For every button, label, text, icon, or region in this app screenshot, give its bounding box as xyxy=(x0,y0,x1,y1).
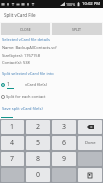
button[interactable]: 7 xyxy=(1,152,24,166)
staticText: 6 xyxy=(62,138,67,148)
button[interactable]: 2 xyxy=(26,120,50,134)
staticText: Size(bytes): 1767158 xyxy=(2,53,40,58)
staticText: 4 xyxy=(10,138,15,148)
button[interactable]: Done xyxy=(78,136,102,150)
staticText: Contact(s): 538 xyxy=(2,60,30,65)
staticText: 100% xyxy=(66,2,76,7)
staticText: 9 xyxy=(62,154,67,164)
button[interactable]: 0 xyxy=(26,168,50,182)
staticText: 0 xyxy=(36,170,41,180)
button[interactable]: 4 xyxy=(1,136,24,150)
staticText: Split vCard File xyxy=(4,12,36,18)
button[interactable]: 9 xyxy=(52,152,76,166)
staticText: 7 xyxy=(10,154,15,164)
staticText: 1 xyxy=(10,122,15,132)
button[interactable]: CLOSE xyxy=(1,23,50,35)
button[interactable]: 1 xyxy=(1,120,24,134)
button[interactable]: Split for each contact xyxy=(0,92,103,101)
button[interactable]: Backspace xyxy=(78,120,102,134)
staticText: Split for each contact xyxy=(6,94,46,99)
button[interactable]: SPLIT xyxy=(52,23,102,35)
button[interactable]: 5 xyxy=(26,136,50,150)
button[interactable]: Switch keyboard xyxy=(78,168,102,182)
staticText: vCard file(s) xyxy=(25,82,47,87)
button[interactable]: 3 xyxy=(52,120,76,134)
staticText: 10:02 PM xyxy=(82,1,101,7)
staticText: CLOSE xyxy=(20,27,31,32)
staticText: 8 xyxy=(36,154,41,164)
staticText: Name: BackupAllContacts.vcf xyxy=(2,45,57,50)
staticText: Selected vCard file details xyxy=(2,37,50,42)
staticText: SPLIT xyxy=(72,27,82,32)
staticText: Split selected vCard file into xyxy=(2,71,54,76)
staticText: 1 xyxy=(7,81,10,88)
button[interactable]: 1 xyxy=(0,80,103,89)
button[interactable]: 6 xyxy=(52,136,76,150)
staticText: 3 xyxy=(62,122,67,132)
button[interactable]: 8 xyxy=(26,152,50,166)
staticText: 2 xyxy=(36,122,41,132)
staticText: Save split vCard file(s) xyxy=(2,106,43,111)
staticText: Done xyxy=(85,140,96,146)
staticText: 5 xyxy=(36,138,41,148)
